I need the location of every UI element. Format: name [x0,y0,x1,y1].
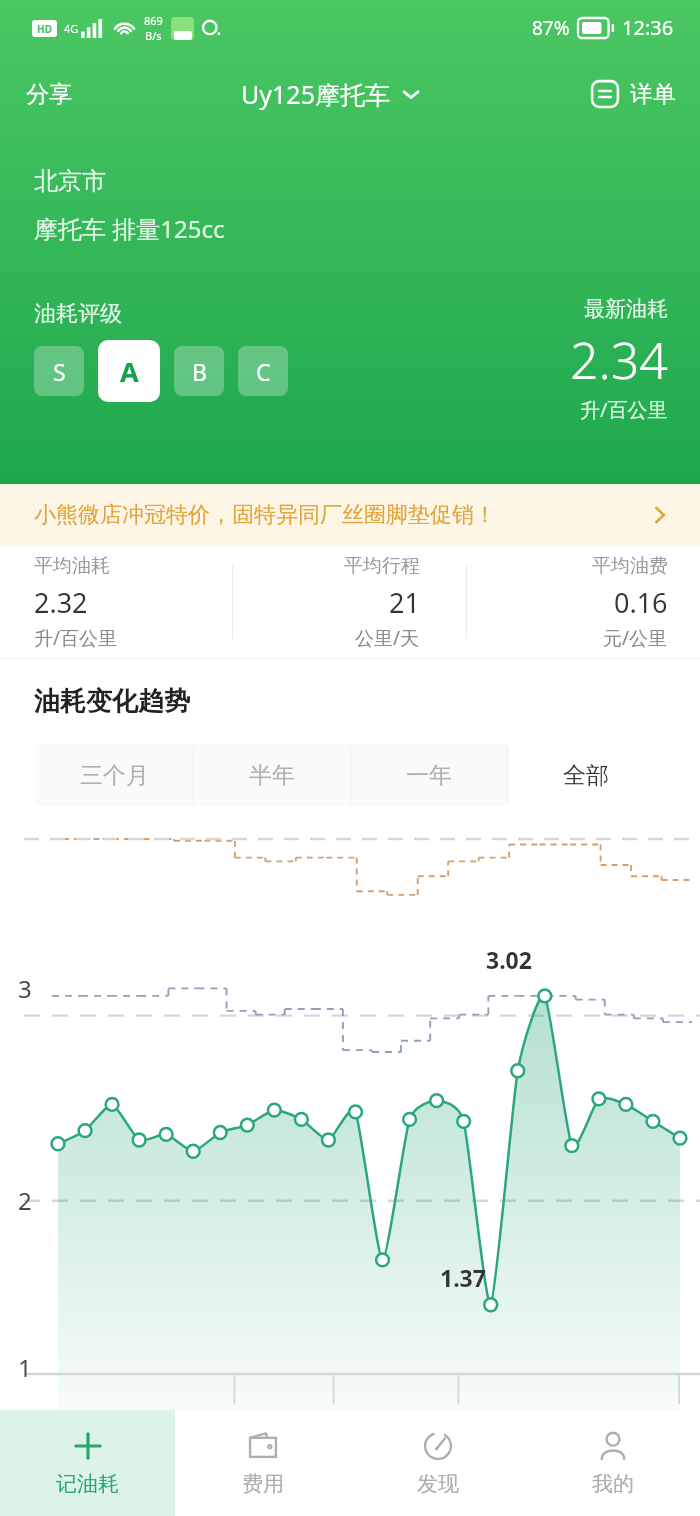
staticText: 2.34 [570,326,668,394]
other: 详单 [590,79,620,109]
staticText: 发现 [417,1471,459,1497]
button[interactable]: Uy125摩托车 [233,69,430,119]
staticText: 最新油耗 [584,296,668,322]
staticText: 4G [64,21,79,36]
button[interactable]: 分享 [0,70,86,119]
staticText: C [256,356,271,387]
staticText: 全部 [563,761,609,790]
staticText: 平均行程 [344,554,420,578]
staticText: 平均油耗 [34,554,110,578]
staticText: 详单 [630,80,676,109]
button[interactable]: 发现 [350,1410,525,1516]
staticText: 油耗评级 [34,300,122,328]
staticText: HD [37,22,52,36]
staticText: 升/百公里 [34,625,118,651]
button[interactable]: 全部 [507,744,664,806]
button[interactable]: B [174,346,224,396]
button[interactable]: 三个月 [36,744,193,806]
staticText: 费用 [242,1471,284,1497]
staticText: 0.16 [614,584,668,621]
staticText: 12:36 [622,14,674,41]
staticText: 元/公里 [603,625,668,651]
staticText: 一年 [406,761,452,790]
staticText: 记油耗 [56,1471,119,1497]
button[interactable]: 详单 [578,69,700,119]
staticText: 2.32 [34,584,88,621]
staticText: 分享 [26,80,72,109]
button[interactable]: 小熊微店冲冠特价，固特异同厂丝圈脚垫促销！ [0,484,700,546]
staticText: 1 [18,1351,32,1384]
staticText: 小熊微店冲冠特价，固特异同厂丝圈脚垫促销！ [34,501,496,529]
button[interactable]: S [34,346,84,396]
staticText: Uy125摩托车 [241,77,390,111]
staticText: B/s [145,28,162,43]
staticText: 869 [144,13,163,28]
button[interactable]: 一年 [350,744,507,806]
button[interactable]: 半年 [193,744,350,806]
staticText: A [120,353,139,390]
button[interactable]: 费用 [175,1410,350,1516]
staticText: 3 [18,972,32,1005]
staticText: 1.37 [440,1262,486,1293]
button[interactable]: 我的 [525,1410,700,1516]
staticText: 油耗变化趋势 [34,685,190,718]
staticText: 3.02 [486,944,532,975]
staticText: 半年 [249,761,295,790]
staticText: 平均油费 [592,554,668,578]
button[interactable]: C [238,346,288,396]
staticText: B [192,356,207,387]
staticText: S [53,356,66,387]
staticText: 摩托车 排量125cc [34,212,225,245]
staticText: 21 [389,584,420,621]
staticText: 北京市 [34,166,106,196]
staticText: 我的 [592,1471,634,1497]
staticText: 2 [18,1184,32,1217]
button[interactable]: A [98,340,160,402]
staticText: 87% [532,15,570,41]
staticText: 公里/天 [355,625,420,651]
staticText: 升/百公里 [580,396,668,423]
button[interactable]: 记油耗 [0,1410,175,1516]
staticText: 三个月 [80,761,149,790]
